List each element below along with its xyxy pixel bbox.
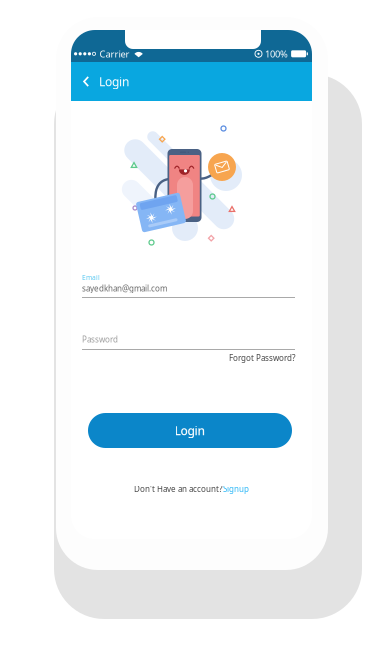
staticText: Login bbox=[99, 73, 129, 89]
staticText: Don't Have an account? bbox=[134, 484, 222, 494]
staticText: 100% bbox=[265, 48, 288, 60]
staticText: Login bbox=[174, 422, 205, 438]
staticText: Carrier bbox=[100, 48, 130, 60]
button[interactable]: Login bbox=[88, 413, 292, 448]
button[interactable]: Don't Have an account? bbox=[71, 483, 312, 495]
staticText: sayedkhan@gmail.com bbox=[82, 283, 167, 294]
staticText: Signup bbox=[223, 484, 249, 494]
button[interactable]: Forgot Password? bbox=[82, 352, 295, 364]
staticText: Email bbox=[82, 273, 100, 282]
staticText: Password bbox=[82, 334, 118, 345]
staticText: Forgot Password? bbox=[229, 353, 295, 363]
button[interactable]: Back bbox=[73, 62, 99, 101]
